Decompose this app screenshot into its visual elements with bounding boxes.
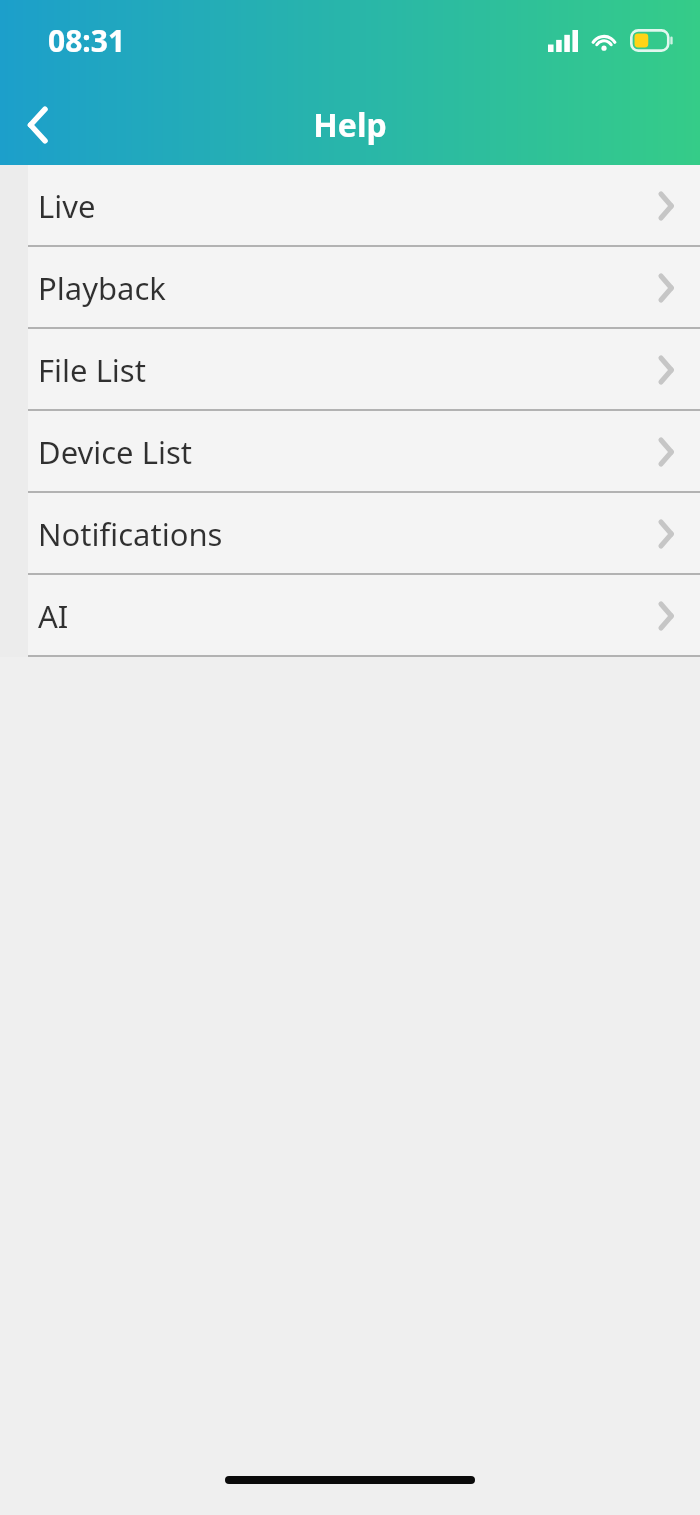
button[interactable]: Device List bbox=[0, 411, 700, 493]
staticText: File List bbox=[38, 349, 146, 391]
staticText: 08:31 bbox=[48, 20, 126, 61]
staticText: AI bbox=[38, 595, 69, 637]
staticText: Device List bbox=[38, 431, 192, 473]
button[interactable]: Live bbox=[0, 165, 700, 247]
button[interactable]: File List bbox=[0, 329, 700, 411]
staticText: Notifications bbox=[38, 513, 223, 555]
button[interactable]: Back bbox=[0, 87, 76, 163]
staticText: Help bbox=[313, 103, 387, 147]
button[interactable]: Notifications bbox=[0, 493, 700, 575]
staticText: Live bbox=[38, 185, 96, 227]
staticText: Playback bbox=[38, 267, 166, 309]
button[interactable]: AI bbox=[0, 575, 700, 657]
button[interactable]: Playback bbox=[0, 247, 700, 329]
